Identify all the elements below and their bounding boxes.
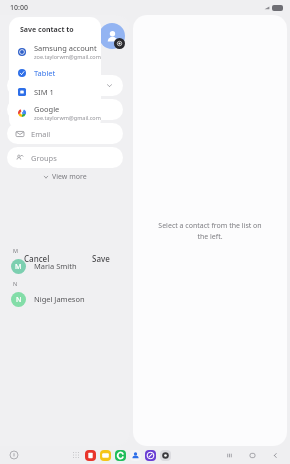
button[interactable]: Internet bbox=[145, 450, 156, 461]
button[interactable]: Contacts bbox=[130, 450, 141, 461]
staticText: zoe.taylorwm@gmail.com bbox=[34, 53, 101, 60]
button[interactable]: Back bbox=[271, 451, 280, 460]
staticText: 10:00 bbox=[10, 3, 28, 13]
button[interactable]: My Files bbox=[100, 450, 111, 461]
button[interactable]: Cancel bbox=[5, 248, 69, 268]
staticText: Email bbox=[31, 129, 51, 139]
staticText: Cancel bbox=[24, 253, 50, 264]
button[interactable]: View more bbox=[0, 168, 130, 186]
button[interactable]: Save bbox=[69, 248, 133, 268]
button[interactable]: N bbox=[0, 288, 130, 310]
button[interactable]: Phone bbox=[115, 450, 126, 461]
button[interactable]: Camera bbox=[160, 450, 171, 461]
staticText: zoe.taylorwm@gmail.com bbox=[34, 114, 101, 121]
button[interactable]: Samsung Notes bbox=[85, 450, 96, 461]
staticText: M bbox=[13, 247, 18, 254]
button[interactable]: Samsung account bbox=[9, 40, 101, 63]
button[interactable]: SIM 1 bbox=[9, 82, 101, 101]
button[interactable]: Recents bbox=[225, 451, 234, 460]
other: Downloads bbox=[10, 451, 18, 459]
staticText: Groups bbox=[31, 153, 57, 163]
staticText: N bbox=[13, 280, 18, 287]
staticText: Google bbox=[34, 104, 60, 114]
staticText: Save bbox=[92, 253, 110, 264]
staticText: N bbox=[16, 295, 22, 305]
staticText: SIM 1 bbox=[34, 87, 54, 97]
button[interactable]: M bbox=[0, 255, 130, 277]
button[interactable] bbox=[7, 99, 123, 120]
button[interactable]: All apps bbox=[72, 451, 80, 459]
staticText: Tablet bbox=[34, 68, 56, 78]
staticText: Samsung account bbox=[34, 43, 97, 53]
staticText: View more bbox=[52, 172, 87, 182]
button[interactable]: Google bbox=[9, 101, 101, 124]
staticText: Maria Smith bbox=[34, 261, 77, 271]
button[interactable]: Contact photo bbox=[99, 23, 125, 49]
button[interactable]: Home bbox=[248, 451, 257, 460]
staticText: Save contact to bbox=[20, 25, 74, 35]
button[interactable]: Groups bbox=[7, 147, 123, 168]
staticText: M bbox=[15, 262, 22, 272]
button[interactable]: Email bbox=[7, 123, 123, 144]
staticText: Nigel Jameson bbox=[34, 294, 85, 304]
staticText: Select a contact from the list on the le… bbox=[157, 221, 263, 241]
button[interactable]: Tablet bbox=[9, 63, 101, 82]
button[interactable] bbox=[7, 75, 123, 96]
